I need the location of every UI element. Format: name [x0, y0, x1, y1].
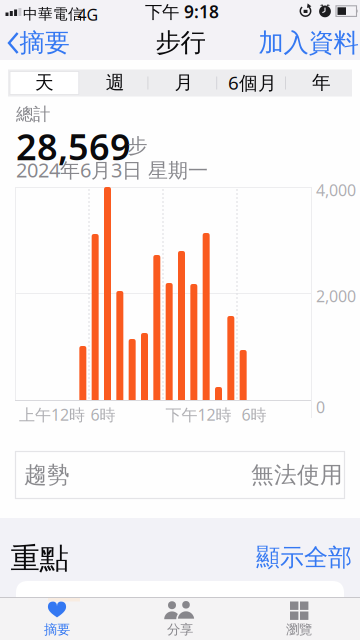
button[interactable]: 加入資料	[258, 27, 358, 58]
staticText: 加入資料	[258, 27, 358, 58]
staticText: 6時	[241, 404, 266, 425]
staticText: 4G	[77, 4, 98, 25]
button[interactable]: 週	[81, 70, 149, 96]
button[interactable]: 瀏覽	[245, 598, 355, 640]
staticText: 週	[106, 71, 125, 94]
staticText: 步行	[155, 27, 205, 58]
staticText: 分享	[167, 621, 193, 638]
button[interactable]: 趨勢	[15, 451, 345, 499]
staticText: 上午12時	[19, 404, 85, 425]
staticText: 天	[35, 71, 54, 94]
staticText: 步	[127, 133, 147, 158]
staticText: 月	[174, 71, 193, 94]
staticText: 下午12時	[165, 404, 231, 425]
staticText: 6時	[90, 404, 115, 425]
button[interactable]: 摘要	[2, 598, 112, 640]
staticText: 重點	[10, 540, 68, 576]
staticText: 總計	[16, 103, 50, 125]
button[interactable]: 月	[150, 70, 218, 96]
staticText: 28,569	[16, 122, 131, 170]
staticText: 摘要	[19, 27, 69, 58]
staticText: 中華電信	[23, 5, 83, 23]
staticText: 下午 9:18	[145, 0, 219, 23]
button[interactable]: 顯示全部	[256, 543, 352, 572]
staticText: 趨勢	[24, 461, 70, 489]
button[interactable]: 返回摘要	[0, 0, 70, 60]
button[interactable]: 分享	[125, 598, 235, 640]
staticText: 2024年6月3日 星期一	[16, 156, 208, 183]
button[interactable]: 6個月	[218, 70, 286, 96]
staticText: 0	[316, 396, 325, 418]
staticText: 無法使用	[251, 461, 343, 489]
button[interactable]: 年	[288, 70, 356, 96]
staticText: 6個月	[228, 70, 277, 95]
staticText: 顯示全部	[256, 543, 352, 572]
staticText: 瀏覽	[286, 621, 312, 638]
staticText: 4,000	[316, 179, 356, 201]
staticText: 2,000	[316, 285, 356, 307]
staticText: 摘要	[44, 621, 70, 638]
staticText: 年	[312, 71, 331, 94]
button[interactable]: 天	[10, 70, 78, 96]
